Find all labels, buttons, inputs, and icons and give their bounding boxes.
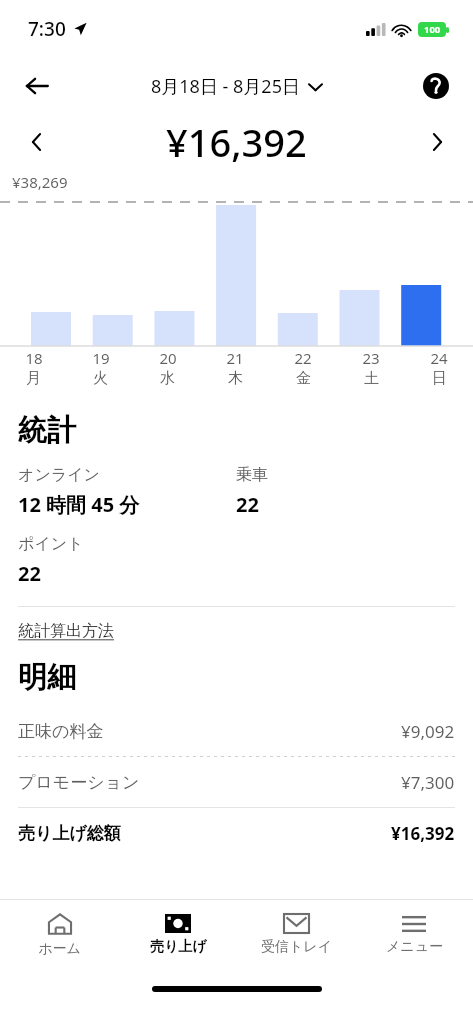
staticText: 月 — [26, 369, 41, 388]
staticText: 100 — [424, 23, 441, 36]
button[interactable]: 20 — [134, 348, 201, 388]
staticText: 乗車 — [236, 465, 268, 485]
staticText: オンライン — [18, 465, 100, 485]
staticText: 7:30 — [28, 16, 66, 42]
staticText: 24 — [430, 348, 448, 368]
staticText: 18 — [25, 348, 43, 368]
staticText: 23 — [362, 348, 380, 368]
button[interactable]: プロモーション — [18, 757, 455, 807]
staticText: 明細 — [18, 659, 76, 696]
button[interactable]: Next week — [417, 122, 457, 162]
button[interactable]: 22 — [269, 348, 337, 388]
button[interactable]: 21 — [201, 348, 269, 388]
staticText: 12 時間 45 分 — [18, 491, 140, 518]
staticText: 受信トレイ — [261, 938, 332, 956]
staticText: ホーム — [38, 940, 81, 958]
staticText: 22 — [294, 348, 312, 368]
staticText: 統計 — [18, 412, 76, 449]
button[interactable]: Help — [413, 63, 459, 109]
staticText: メニュー — [386, 938, 443, 956]
button[interactable]: メニュー — [355, 909, 473, 962]
staticText: 正味の料金 — [18, 721, 401, 742]
button[interactable]: 19 — [67, 348, 134, 388]
staticText: 金 — [296, 369, 311, 388]
staticText: ¥38,269 — [12, 172, 68, 192]
staticText: 売り上げ総額 — [18, 823, 391, 844]
staticText: 22 — [18, 560, 41, 587]
button[interactable]: 統計算出方法 — [18, 621, 114, 641]
staticText: 8月18日 - 8月25日 — [151, 74, 300, 99]
staticText: 売り上げ — [150, 938, 207, 956]
staticText: ¥7,300 — [401, 771, 455, 794]
staticText: ¥9,092 — [401, 720, 455, 743]
button[interactable]: 18 — [0, 348, 67, 388]
button[interactable]: 売り上げ — [119, 908, 237, 962]
staticText: 土 — [364, 369, 379, 388]
staticText: プロモーション — [18, 772, 401, 793]
staticText: 21 — [226, 348, 244, 368]
staticText: 統計算出方法 — [18, 621, 114, 641]
button[interactable]: Previous week — [16, 122, 56, 162]
staticText: 水 — [160, 369, 175, 388]
button[interactable]: 23 — [337, 348, 405, 388]
button[interactable]: 24 — [405, 348, 473, 388]
staticText: 火 — [93, 369, 108, 388]
staticText: 20 — [159, 348, 177, 368]
button[interactable]: 正味の料金 — [18, 706, 455, 756]
staticText: 22 — [236, 491, 259, 518]
button[interactable]: 8月18日 - 8月25日 — [151, 74, 322, 99]
staticText: ¥16,392 — [166, 116, 307, 168]
staticText: ¥16,392 — [391, 822, 455, 845]
staticText: 木 — [228, 369, 243, 388]
button[interactable]: Back — [14, 63, 60, 109]
button[interactable]: 受信トレイ — [237, 908, 355, 962]
button[interactable]: 売り上げ総額 — [18, 808, 455, 858]
button[interactable]: ホーム — [0, 907, 119, 964]
staticText: 19 — [92, 348, 110, 368]
staticText: 日 — [432, 369, 447, 388]
staticText: ポイント — [18, 534, 84, 554]
